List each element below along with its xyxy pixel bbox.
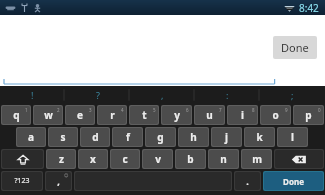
button[interactable]: , [130,86,195,104]
button[interactable]: z [47,150,75,168]
staticText: ; [291,89,294,101]
button[interactable]: m [242,150,271,168]
staticText: o [272,108,279,122]
staticText: u [206,108,213,122]
staticText: , [57,175,60,187]
staticText: q [13,108,20,122]
button[interactable]: e [66,106,94,124]
staticText: v [155,152,161,166]
button[interactable]: u [195,106,224,124]
staticText: t [142,108,147,122]
staticText: 8:42 [299,1,319,15]
button[interactable]: i [228,106,257,124]
staticText: 2 [57,107,60,113]
button[interactable]: a [17,128,45,146]
staticText: y [174,108,180,122]
staticText: f [126,130,130,144]
button[interactable]: f [113,128,142,146]
button[interactable]: : [195,86,260,104]
staticText: . [246,175,249,187]
button[interactable]: ; [260,86,325,104]
staticText: ?123 [14,176,30,186]
staticText: 0 [318,107,321,113]
staticText: h [190,130,197,144]
button[interactable]: p [294,106,323,124]
staticText: ? [96,89,100,101]
staticText: r [110,108,115,122]
button[interactable]: k [245,128,274,146]
staticText: 3 [89,107,92,113]
button[interactable]: , [46,172,71,190]
staticText: j [225,130,228,144]
button[interactable]: ?123 [2,172,42,190]
staticText: d [92,130,99,144]
button[interactable]: n [209,150,238,168]
button[interactable]: g [146,128,175,146]
staticText: , [161,89,164,101]
button[interactable]: d [81,128,109,146]
button[interactable]: b [176,150,205,168]
button[interactable]: c [111,150,139,168]
staticText: ! [31,89,34,101]
staticText: l [291,130,294,144]
staticText: a [28,130,34,144]
staticText: b [187,152,194,166]
staticText: 7 [219,107,222,113]
staticText: s [60,130,66,144]
button[interactable]: h [179,128,208,146]
staticText: 9 [285,107,288,113]
button[interactable]: Done [273,36,317,59]
button[interactable]: Done [264,172,323,190]
button[interactable]: s [49,128,77,146]
button[interactable]: l [278,128,307,146]
staticText: 5 [153,107,156,113]
staticText: 8 [252,107,255,113]
button[interactable]: y [162,106,191,124]
button[interactable]: Shift [2,150,43,168]
staticText: : [226,89,229,101]
staticText: z [59,152,64,166]
staticText: Done [281,40,309,55]
staticText: 1 [25,107,28,113]
staticText: c [122,152,128,166]
staticText: g [157,130,164,144]
button[interactable]: r [98,106,126,124]
staticText: i [241,108,244,122]
button[interactable]: Backspace [275,150,323,168]
staticText: ☺ [64,173,69,178]
staticText: Done [283,176,304,187]
button[interactable]: w [34,106,62,124]
button[interactable]: x [79,150,107,168]
button[interactable]: . [235,172,260,190]
staticText: 6 [186,107,189,113]
button[interactable]: q [2,106,30,124]
button[interactable]: o [261,106,290,124]
button[interactable]: ? [65,86,130,104]
staticText: 4 [121,107,124,113]
staticText: w [44,108,53,122]
staticText: e [77,108,83,122]
staticText: k [256,130,263,144]
staticText: m [252,152,262,166]
button[interactable]: j [212,128,241,146]
staticText: x [90,152,96,166]
staticText: n [220,152,227,166]
button[interactable]: ! [0,86,65,104]
staticText: p [305,108,312,122]
button[interactable]: v [143,150,172,168]
button[interactable]: t [130,106,158,124]
